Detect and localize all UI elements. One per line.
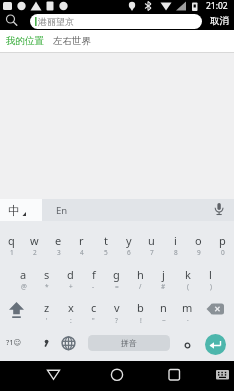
button[interactable]: q [0,221,23,256]
button[interactable]: p [211,221,234,256]
button[interactable] [205,334,226,355]
button[interactable] [104,365,130,387]
button[interactable]: 中 [0,199,42,221]
staticText: e [55,233,62,248]
staticText: ' [46,316,48,325]
button[interactable]: j [152,256,175,291]
staticText: h [137,267,144,282]
staticText: 左右世界 [53,35,91,47]
button[interactable]: ?1☺ [2,333,25,351]
button[interactable]: g [105,256,128,291]
staticText: v [114,300,120,315]
button[interactable]: En [50,199,74,221]
button[interactable]: f [82,256,105,291]
staticText: 6 [127,248,131,257]
button[interactable]: w [23,221,46,256]
staticText: * [45,282,49,291]
button[interactable]: v [105,291,128,326]
button[interactable]: z [35,291,58,326]
staticText: 5 [104,248,108,257]
staticText: w [30,233,39,248]
staticText: q [8,233,15,248]
staticText: - [92,282,95,291]
staticText: u [148,233,155,248]
staticText: l [209,267,212,282]
staticText: m [182,300,193,315]
button[interactable]: d [59,256,82,291]
button[interactable]: x [59,291,82,326]
staticText: 9 [197,248,201,257]
staticText: ~ [162,316,166,325]
staticText: 4 [80,248,84,257]
staticText: i [174,233,177,248]
staticText: ? [115,316,118,325]
staticText: / [139,282,142,291]
button[interactable]: r [70,221,93,256]
button[interactable] [57,332,80,355]
button[interactable] [37,332,55,352]
staticText: 取消 [210,15,229,27]
button[interactable]: 拼音 [88,335,170,351]
staticText: 3 [57,248,61,257]
button[interactable]: o [187,221,210,256]
staticText: ( [187,282,189,291]
staticText: 1 [10,248,14,257]
staticText: y [126,233,132,248]
staticText: z [44,300,50,315]
staticText: · [187,316,189,325]
staticText: @ [21,282,27,291]
button[interactable] [201,291,234,326]
staticText: 21:02 [206,0,228,12]
staticText: o [195,233,202,248]
staticText: 7 [150,248,154,257]
button[interactable]: c [82,291,105,326]
button[interactable]: 取消 [204,12,234,30]
staticText: + [69,282,73,291]
button[interactable]: e [47,221,70,256]
staticText: p [219,233,226,248]
button[interactable]: b [129,291,152,326]
staticText: 8 [174,248,178,257]
button[interactable] [162,365,188,387]
staticText: k [185,267,191,282]
button[interactable]: s [35,256,58,291]
staticText: 港丽望京 [38,16,74,27]
button[interactable]: h [129,256,152,291]
staticText: ) [210,282,212,291]
staticText: ?1☺ [6,337,22,347]
button[interactable]: l [199,256,222,291]
staticText: b [137,300,144,315]
staticText: x [68,300,74,315]
staticText: ! [140,316,142,325]
staticText: En [56,204,68,217]
button[interactable]: a [12,256,35,291]
staticText: n [160,300,167,315]
button[interactable] [0,291,33,326]
staticText: 2 [33,248,37,257]
staticText: = [115,282,119,291]
staticText: 0 [221,248,225,257]
staticText: d [67,267,74,282]
staticText: r [79,233,84,248]
button[interactable]: 港丽望京 [30,14,202,29]
button[interactable]: n [152,291,175,326]
button[interactable] [179,332,197,352]
staticText: j [162,267,165,282]
staticText: a [20,267,27,282]
button[interactable]: 我的位置 [0,30,234,53]
button[interactable]: i [164,221,187,256]
button[interactable]: y [117,221,140,256]
staticText: s [44,267,50,282]
staticText: 拼音 [121,338,137,348]
staticText: : [70,316,72,325]
staticText: 中 [8,203,20,218]
button[interactable]: k [176,256,199,291]
button[interactable] [39,366,67,388]
staticText: " [92,316,95,325]
button[interactable]: m [176,291,199,326]
staticText: c [91,300,97,315]
staticText: 我的位置 [6,35,44,47]
button[interactable]: u [140,221,163,256]
button[interactable]: t [94,221,117,256]
staticText: t [104,233,108,248]
